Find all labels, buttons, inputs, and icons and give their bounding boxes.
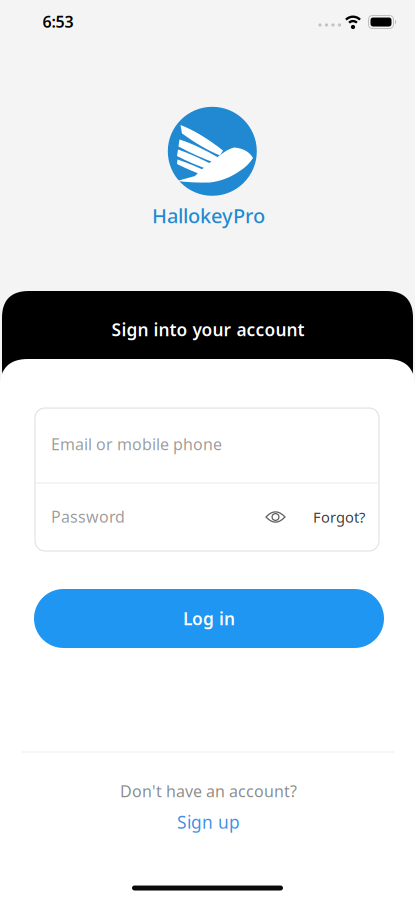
button[interactable]: Password (35, 483, 265, 550)
staticText: Forgot? (313, 507, 365, 527)
button[interactable]: Show password (260, 502, 290, 532)
button[interactable]: Forgot? (302, 497, 376, 537)
staticText: Log in (183, 607, 235, 630)
staticText: Sign up (177, 810, 240, 833)
staticText: 6:53 (42, 11, 73, 32)
staticText: HallokeyPro (152, 202, 265, 229)
staticText: Don't have an account? (120, 780, 297, 802)
staticText: Sign into your account (111, 318, 304, 341)
staticText: Password (51, 506, 125, 527)
staticText: Email or mobile phone (51, 433, 222, 455)
button[interactable]: Sign up (158, 805, 258, 839)
button[interactable]: Log in (34, 589, 384, 648)
button[interactable]: Email or mobile phone (35, 407, 379, 481)
